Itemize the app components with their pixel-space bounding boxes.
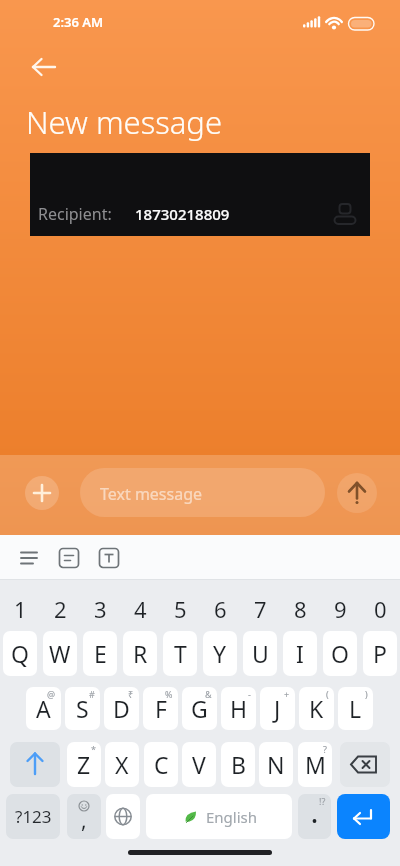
staticText: 8 xyxy=(294,594,307,624)
button[interactable]: 3 xyxy=(80,583,120,635)
button[interactable]: English xyxy=(146,794,292,839)
button[interactable]: I xyxy=(283,631,317,676)
staticText: X xyxy=(115,749,129,780)
button[interactable] xyxy=(93,544,125,572)
button[interactable]: N xyxy=(259,742,293,787)
staticText: G xyxy=(191,693,208,724)
button[interactable]: Recipient: xyxy=(30,153,370,236)
button[interactable]: H xyxy=(221,687,256,730)
staticText: J xyxy=(274,693,281,724)
staticText: ? xyxy=(323,743,327,755)
button[interactable]: Q xyxy=(3,631,37,676)
staticText: Q xyxy=(11,638,29,669)
button[interactable]: V xyxy=(182,742,216,787)
staticText: 6 xyxy=(214,594,227,624)
button[interactable]: J xyxy=(260,687,295,730)
button[interactable]: E xyxy=(83,631,117,676)
button[interactable]: O xyxy=(323,631,357,676)
button[interactable]: P xyxy=(363,631,397,676)
button[interactable]: 4 xyxy=(120,583,160,635)
button[interactable]: A xyxy=(26,687,61,730)
button[interactable]: R xyxy=(123,631,157,676)
button[interactable]: X xyxy=(105,742,139,787)
button[interactable]: 8 xyxy=(280,583,320,635)
staticText: 4 xyxy=(134,594,147,624)
staticText: A xyxy=(36,693,51,724)
staticText: P xyxy=(373,638,387,669)
staticText: B xyxy=(231,749,246,780)
staticText: 5 xyxy=(174,594,187,624)
button[interactable]: C xyxy=(144,742,178,787)
button[interactable]: F xyxy=(143,687,178,730)
staticText: 0 xyxy=(374,594,387,624)
button[interactable]: 1 xyxy=(0,583,40,635)
button[interactable]: K xyxy=(299,687,334,730)
button[interactable]: 6 xyxy=(200,583,240,635)
staticText: V xyxy=(192,749,206,780)
staticText: K xyxy=(309,693,324,724)
button[interactable] xyxy=(340,742,390,787)
staticText: % xyxy=(165,688,173,700)
button[interactable]: Y xyxy=(203,631,237,676)
staticText: W xyxy=(49,638,71,669)
staticText: , xyxy=(81,806,87,835)
staticText: Z xyxy=(77,749,91,780)
staticText: T xyxy=(174,638,187,669)
staticText: S xyxy=(76,693,89,724)
button[interactable]: G xyxy=(182,687,217,730)
button[interactable]: M xyxy=(298,742,332,787)
button[interactable]: Text message xyxy=(80,468,325,517)
button[interactable]: L xyxy=(338,687,373,730)
staticText: Y xyxy=(213,638,227,669)
staticText: I xyxy=(296,638,304,669)
button[interactable]: , xyxy=(67,794,101,839)
staticText: H xyxy=(230,693,248,724)
staticText: 1 xyxy=(14,594,27,624)
staticText: O xyxy=(331,638,349,669)
button[interactable]: Z xyxy=(67,742,101,787)
button[interactable]: S xyxy=(65,687,100,730)
button[interactable] xyxy=(337,794,390,839)
staticText: English xyxy=(206,807,258,827)
staticText: & xyxy=(205,688,212,700)
staticText: N xyxy=(267,749,285,780)
staticText: ?123 xyxy=(15,805,52,828)
staticText: - xyxy=(248,688,251,700)
staticText: 18730218809 xyxy=(135,204,230,224)
staticText: 9 xyxy=(334,594,347,624)
button[interactable]: B xyxy=(221,742,255,787)
staticText: R xyxy=(133,638,148,669)
button[interactable]: 7 xyxy=(240,583,280,635)
button[interactable]: 9 xyxy=(320,583,360,635)
staticText: ) xyxy=(365,688,368,700)
staticText: L xyxy=(349,693,362,724)
staticText: 2 xyxy=(54,594,67,624)
button[interactable] xyxy=(53,544,85,572)
button[interactable]: ?123 xyxy=(6,794,60,839)
staticText: ( xyxy=(326,688,329,700)
button[interactable] xyxy=(20,54,56,80)
button[interactable] xyxy=(106,794,140,839)
staticText: 7 xyxy=(254,594,267,624)
staticText: Recipient: xyxy=(38,203,112,225)
staticText: D xyxy=(113,693,130,724)
button[interactable]: 5 xyxy=(160,583,200,635)
button[interactable]: T xyxy=(163,631,197,676)
staticText: F xyxy=(155,693,167,724)
button[interactable]: !? xyxy=(298,794,331,839)
staticText: Text message xyxy=(100,483,203,505)
staticText: 3 xyxy=(94,594,107,624)
button[interactable] xyxy=(337,473,377,513)
button[interactable]: 0 xyxy=(360,583,400,635)
staticText: 2:36 AM xyxy=(53,13,104,31)
staticText: E xyxy=(94,638,107,669)
button[interactable]: 2 xyxy=(40,583,80,635)
staticText: New message xyxy=(26,101,223,143)
button[interactable]: U xyxy=(243,631,277,676)
button[interactable]: D xyxy=(104,687,139,730)
button[interactable] xyxy=(10,742,60,787)
button[interactable] xyxy=(25,476,59,510)
button[interactable] xyxy=(13,544,45,572)
button[interactable]: W xyxy=(43,631,77,676)
staticText: M xyxy=(305,749,326,780)
